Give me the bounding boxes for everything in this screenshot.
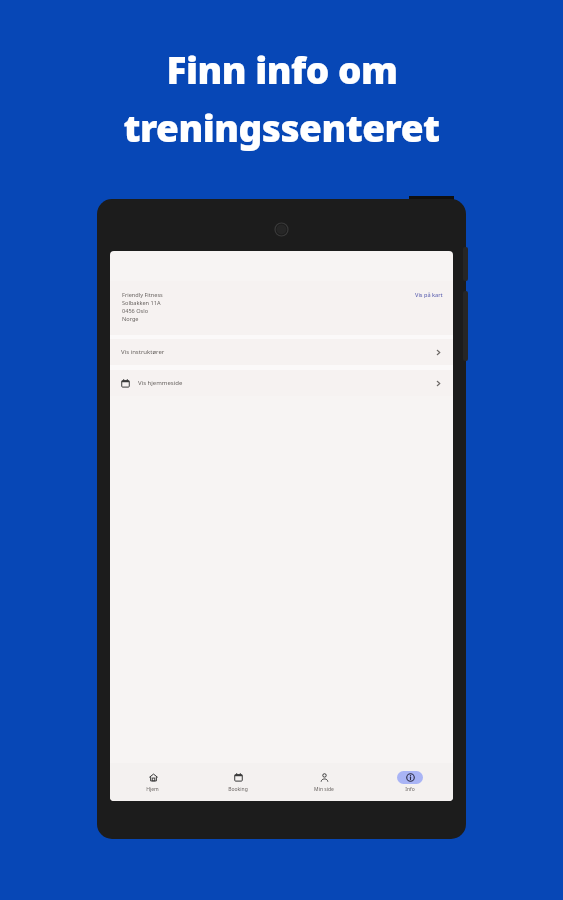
staticText: Min side (314, 786, 334, 793)
staticText: Vis instruktører (121, 348, 435, 356)
staticText: Solbakken 11A (122, 299, 161, 307)
button[interactable]: Booking (195, 771, 281, 793)
staticText: Friendly Fitness (122, 291, 163, 299)
staticText: treningssenteret (123, 102, 440, 152)
staticText: Hjem (146, 786, 159, 793)
staticText: Booking (228, 786, 248, 793)
button[interactable]: Min side (281, 771, 367, 793)
button[interactable]: Hjem (110, 771, 195, 793)
button[interactable]: Info (367, 771, 453, 793)
staticText: Vis på kart (415, 291, 443, 298)
button[interactable]: Vis hjemmeside (110, 370, 453, 396)
button[interactable]: Vis instruktører (110, 339, 453, 365)
staticText: Norge (122, 315, 139, 323)
button[interactable]: Friendly Fitness (110, 281, 453, 335)
staticText: Info (405, 786, 415, 793)
staticText: Vis hjemmeside (138, 379, 435, 387)
staticText: 0456 Oslo (122, 307, 149, 315)
staticText: Finn info om (166, 44, 398, 94)
